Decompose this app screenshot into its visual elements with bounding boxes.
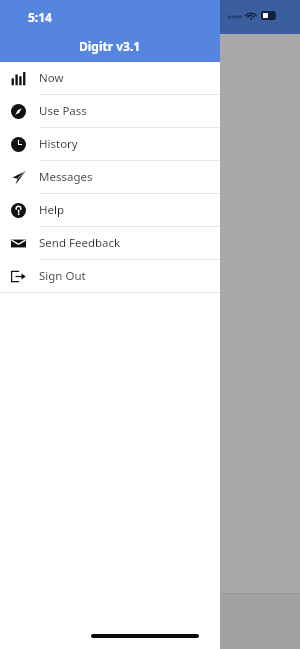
staticText: Sign Out (39, 268, 86, 284)
staticText: Help (39, 202, 65, 218)
staticText: 5:14 (28, 9, 52, 25)
button[interactable]: Help (0, 194, 220, 226)
staticText: Use Pass (39, 103, 87, 119)
staticText: Now (39, 70, 64, 86)
staticText: Digitr v3.1 (79, 38, 141, 54)
button[interactable]: Send Feedback (0, 227, 220, 259)
button[interactable]: Sign Out (0, 260, 220, 292)
staticText: History (39, 136, 78, 152)
button[interactable]: Use Pass (0, 95, 220, 127)
button[interactable]: Now (0, 62, 220, 94)
button[interactable]: History (0, 128, 220, 160)
button[interactable]: Messages (0, 161, 220, 193)
staticText: Messages (39, 169, 93, 185)
staticText: Send Feedback (39, 235, 121, 251)
